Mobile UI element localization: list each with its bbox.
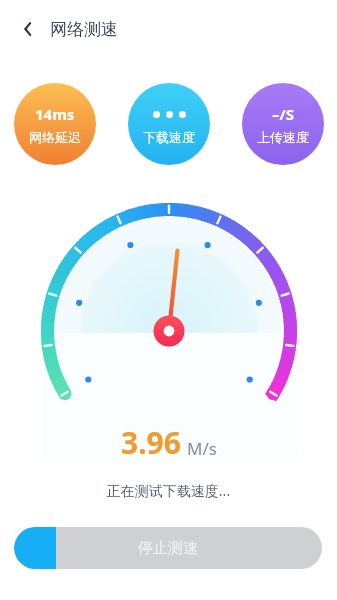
staticText: M/s bbox=[187, 437, 217, 460]
staticText: 停止测速 bbox=[138, 539, 198, 558]
button[interactable]: –/S bbox=[242, 83, 324, 165]
staticText: 14ms bbox=[35, 104, 75, 124]
button[interactable]: Back bbox=[8, 9, 48, 49]
staticText: 网络延迟 bbox=[29, 129, 81, 145]
staticText: –/S bbox=[272, 104, 294, 124]
staticText: 下载速度 bbox=[143, 129, 195, 145]
button[interactable]: 停止测速 bbox=[14, 527, 322, 569]
staticText: 3.96 bbox=[121, 422, 181, 463]
staticText: 正在测试下载速度... bbox=[0, 481, 337, 500]
button[interactable]: 下载速度 bbox=[128, 83, 210, 165]
staticText: 网络测速 bbox=[50, 19, 118, 40]
staticText: 上传速度 bbox=[257, 129, 309, 145]
button[interactable]: 14ms bbox=[14, 83, 96, 165]
